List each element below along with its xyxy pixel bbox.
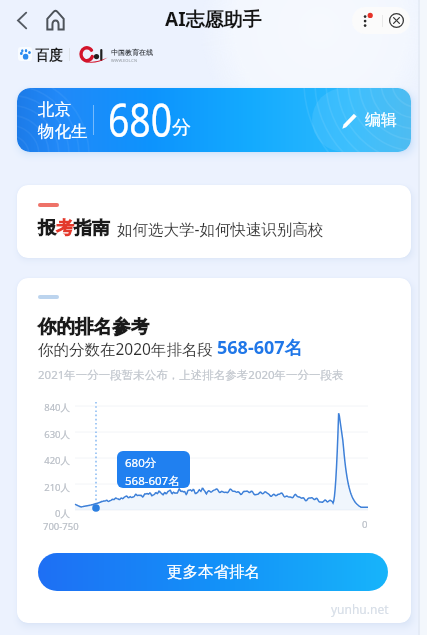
- staticText: AI志愿助手: [165, 6, 262, 32]
- staticText: 840人: [17, 401, 70, 414]
- staticText: 如何选大学-如何快速识别高校: [117, 218, 324, 239]
- staticText: 680: [108, 89, 173, 150]
- staticText: 630人: [17, 428, 70, 441]
- staticText: 北京: [38, 99, 71, 120]
- staticText: 百度: [35, 47, 63, 65]
- staticText: 指南: [74, 217, 110, 240]
- button[interactable]: Home: [42, 7, 68, 33]
- staticText: 物化生: [38, 121, 88, 142]
- button[interactable]: Close: [383, 7, 410, 34]
- staticText: 210人: [17, 481, 70, 494]
- staticText: 568-607名: [125, 473, 180, 488]
- button[interactable]: More options: [352, 7, 382, 34]
- staticText: 编辑: [365, 110, 397, 130]
- staticText: 更多本省排名: [167, 562, 260, 582]
- staticText: 报: [38, 217, 56, 240]
- button[interactable]: 报: [17, 185, 411, 258]
- staticText: 2021年一分一段暂未公布，上述排名参考2020年一分一段表: [38, 367, 344, 383]
- staticText: 568-607名: [217, 335, 303, 360]
- staticText: 分: [172, 116, 191, 140]
- staticText: 你的排名参考: [38, 315, 149, 338]
- button[interactable]: Back: [8, 6, 36, 34]
- button[interactable]: 编辑: [342, 110, 397, 130]
- staticText: WWW.EOL.CN: [111, 58, 137, 63]
- staticText: 考: [56, 217, 74, 240]
- staticText: 0: [362, 518, 368, 531]
- staticText: 中国教育在线: [111, 48, 153, 57]
- staticText: yunhu.net: [331, 601, 389, 617]
- button[interactable]: 更多本省排名: [38, 553, 388, 591]
- staticText: 你的分数在2020年排名段: [38, 338, 217, 359]
- staticText: 420人: [17, 454, 70, 467]
- staticText: 680分: [125, 455, 157, 471]
- button[interactable]: 北京: [17, 88, 411, 152]
- staticText: 700-750: [43, 520, 79, 532]
- staticText: 0人: [17, 507, 70, 520]
